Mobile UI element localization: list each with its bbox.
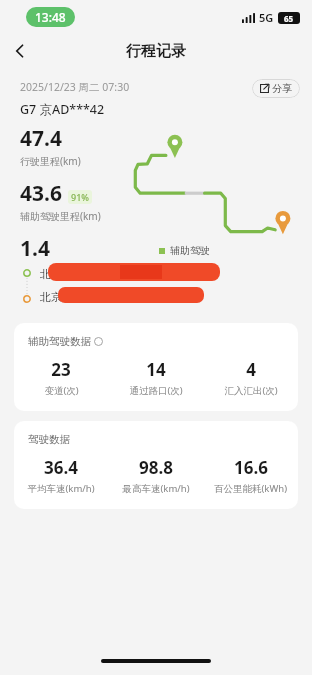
staticText: 65 [284, 13, 294, 24]
staticText: 36.4 [44, 456, 78, 479]
button[interactable]: 驾驶数据 [14, 421, 298, 509]
staticText: 2025/12/23 周二 07:30 [20, 80, 130, 94]
staticText: 5G [259, 10, 274, 25]
staticText: 汇入汇出(次) [224, 384, 278, 397]
staticText: 1.4 [20, 234, 50, 263]
staticText: G7 京AD***42 [20, 101, 105, 118]
staticText: 北京市 [40, 267, 73, 281]
staticText: 驾驶数据 [28, 433, 70, 446]
staticText: 百公里能耗(kWh) [214, 482, 287, 495]
staticText: 最高车速(km/h) [122, 482, 190, 495]
button[interactable]: 辅助驾驶数据 [14, 323, 298, 411]
staticText: 分享 [272, 82, 292, 95]
staticText: 43.6 [20, 179, 62, 208]
staticText: 辅助驾驶里程(km) [20, 209, 101, 223]
staticText: 行驶里程(km) [20, 154, 81, 168]
staticText: 平均车速(km/h) [27, 482, 95, 495]
staticText: 变道(次) [44, 384, 79, 397]
staticText: 91% [71, 191, 89, 203]
staticText: 23 [51, 358, 71, 381]
button[interactable]: Back [0, 34, 40, 68]
staticText: 辅助驾驶数据 [28, 335, 91, 348]
staticText: 辅助驾驶 [170, 244, 210, 257]
staticText: 14 [146, 358, 166, 381]
staticText: 北京市 [40, 290, 73, 304]
staticText: 16.6 [234, 456, 268, 479]
staticText: 行程记录 [126, 42, 186, 61]
button[interactable]: 分享 [252, 79, 300, 98]
staticText: 13:48 [35, 9, 66, 25]
staticText: 47.4 [20, 124, 62, 153]
staticText: 4 [246, 358, 256, 381]
staticText: 通过路口(次) [129, 384, 183, 397]
staticText: 98.8 [139, 456, 173, 479]
